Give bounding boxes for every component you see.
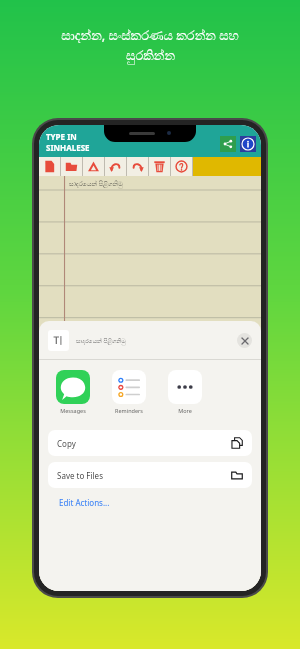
staticText: Save to Files xyxy=(57,470,103,481)
button[interactable]: Help xyxy=(171,157,192,176)
button[interactable]: Info xyxy=(240,136,256,152)
staticText: සාදරයෙන් පිළිගනිමු xyxy=(69,179,123,188)
button[interactable]: More xyxy=(164,370,206,414)
button[interactable]: Close xyxy=(237,333,252,348)
button[interactable]: Undo xyxy=(105,157,126,176)
button[interactable]: Drive xyxy=(83,157,104,176)
button[interactable]: Delete xyxy=(149,157,170,176)
button[interactable]: Messages xyxy=(52,370,94,414)
staticText: SINHALESE xyxy=(46,142,90,153)
staticText: සාදන්න, සංස්කරණය කරන්න සහ xyxy=(61,26,239,44)
button[interactable]: Copy xyxy=(48,430,252,456)
staticText: Reminders xyxy=(115,407,143,414)
staticText: TYPE IN xyxy=(46,131,77,142)
staticText: සාදරයෙන් පිළිගනිමු xyxy=(76,337,126,345)
button[interactable]: Open xyxy=(61,157,82,176)
staticText: More xyxy=(178,407,192,414)
button[interactable]: Redo xyxy=(127,157,148,176)
staticText: Edit Actions... xyxy=(59,497,110,508)
staticText: සුරකින්න xyxy=(126,50,175,63)
button[interactable]: Reminders xyxy=(108,370,150,414)
button[interactable]: Edit Actions... xyxy=(59,497,110,508)
staticText: Copy xyxy=(57,438,76,449)
button[interactable]: New xyxy=(39,157,60,176)
button[interactable]: Save to Files xyxy=(48,462,252,488)
staticText: Messages xyxy=(60,407,86,414)
button[interactable]: Share xyxy=(220,136,236,152)
